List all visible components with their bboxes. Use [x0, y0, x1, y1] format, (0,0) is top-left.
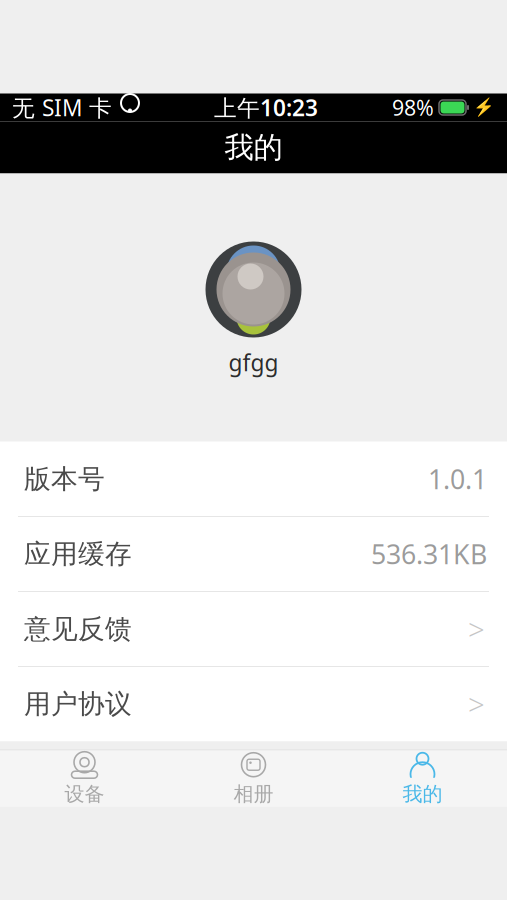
staticText: 我的: [402, 782, 442, 806]
staticText: 意见反馈: [24, 613, 132, 645]
staticText: 设备: [64, 782, 104, 806]
staticText: 上午10:23: [214, 92, 318, 122]
staticText: 我的: [224, 129, 282, 165]
staticText: 用户协议: [24, 688, 132, 720]
staticText: >: [468, 684, 485, 723]
button[interactable]: 设备: [0, 750, 169, 806]
staticText: 应用缓存: [24, 538, 132, 570]
button[interactable]: Profile gfgg: [205, 241, 301, 378]
button[interactable]: 应用缓存: [0, 517, 507, 591]
button[interactable]: 用户协议: [0, 667, 507, 741]
staticText: 版本号: [24, 463, 105, 495]
staticText: 98%: [392, 93, 434, 122]
staticText: gfgg: [228, 347, 278, 378]
staticText: 相册: [233, 782, 273, 806]
staticText: ⚡: [473, 98, 495, 117]
staticText: 1.0.1: [428, 461, 487, 497]
staticText: >: [468, 609, 485, 648]
staticText: 无 SIM 卡: [12, 92, 112, 122]
button[interactable]: 版本号: [0, 442, 507, 516]
staticText: 536.31KB: [371, 536, 487, 572]
button[interactable]: 意见反馈: [0, 592, 507, 666]
button[interactable]: 相册: [169, 750, 338, 806]
button[interactable]: 我的: [338, 750, 507, 806]
